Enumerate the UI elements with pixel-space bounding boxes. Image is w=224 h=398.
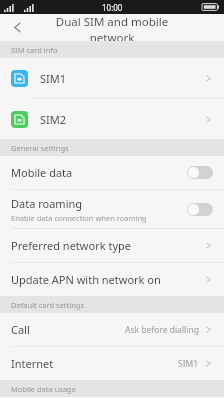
- staticText: Ask before dialling: [125, 324, 199, 336]
- staticText: SIM1: [178, 358, 199, 370]
- staticText: Update APN with network on: [11, 272, 161, 287]
- staticText: SIM card info: [11, 45, 58, 55]
- button[interactable]: Preferred network type: [0, 229, 224, 262]
- staticText: Preferred network type: [11, 238, 131, 253]
- button[interactable]: Mobile data: [0, 156, 224, 189]
- button[interactable]: Back: [0, 14, 34, 41]
- staticText: Enable data connection when roaming: [11, 213, 147, 223]
- button[interactable]: Call: [0, 313, 224, 346]
- button[interactable]: Update APN with network on: [0, 263, 224, 296]
- staticText: Mobile data usage: [11, 384, 76, 394]
- staticText: Dual SIM and mobile network: [36, 14, 188, 41]
- staticText: General settings: [11, 143, 69, 153]
- staticText: SIM1: [40, 71, 67, 86]
- staticText: Call: [11, 322, 30, 337]
- staticText: Data roaming: [11, 196, 83, 211]
- button[interactable]: Data roaming: [0, 190, 224, 228]
- staticText: Internet: [11, 356, 54, 371]
- button[interactable]: SIM2: [0, 99, 224, 139]
- staticText: Mobile data: [11, 165, 73, 180]
- staticText: 10:00: [102, 2, 123, 13]
- button[interactable]: Internet: [0, 347, 224, 380]
- staticText: Default card settings: [11, 300, 85, 310]
- button[interactable]: SIM1: [0, 58, 224, 98]
- staticText: SIM2: [40, 112, 67, 127]
